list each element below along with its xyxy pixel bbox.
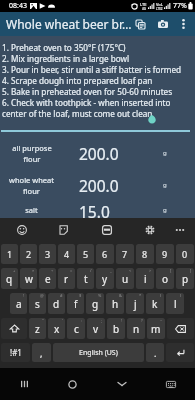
button[interactable]: More options — [174, 12, 192, 36]
button[interactable]: q — [1, 268, 18, 289]
staticText: < — [129, 268, 132, 273]
button[interactable]: emoji — [11, 218, 33, 242]
staticText: c — [74, 322, 79, 336]
staticText: ? — [141, 318, 143, 323]
button[interactable]: sticker — [52, 218, 74, 242]
staticText: * — [139, 293, 142, 298]
button[interactable]: whole wheat flour — [0, 169, 195, 201]
button[interactable]: p — [176, 268, 194, 289]
button[interactable]: salt — [0, 201, 195, 218]
button[interactable]: n — [127, 318, 145, 339]
button[interactable]: 2 — [20, 244, 37, 264]
staticText: 200.0 — [79, 143, 119, 164]
staticText: " — [42, 318, 44, 323]
staticText: # — [60, 293, 63, 298]
staticText: f — [74, 297, 78, 311]
button[interactable]: x — [48, 318, 65, 339]
button[interactable]: y — [96, 268, 114, 289]
button[interactable]: g — [86, 293, 104, 314]
button[interactable]: i — [136, 268, 154, 289]
staticText: 1 — [7, 248, 13, 260]
button[interactable]: Hide keyboard — [97, 368, 146, 400]
staticText: Whole wheat beer br… — [6, 16, 132, 32]
staticText: 3 — [45, 248, 51, 260]
button[interactable]: Backspace — [167, 318, 194, 339]
staticText: i — [144, 272, 147, 286]
button[interactable]: , — [32, 343, 51, 362]
staticText: j — [134, 297, 137, 311]
button[interactable]: o — [156, 268, 174, 289]
button[interactable]: u — [116, 268, 134, 289]
button[interactable]: b — [107, 318, 125, 339]
button[interactable]: more — [169, 218, 191, 242]
button[interactable]: e — [39, 268, 56, 289]
button[interactable]: 8 — [136, 244, 154, 264]
staticText: y — [102, 272, 108, 286]
button[interactable]: s — [29, 293, 46, 314]
staticText: whole wheat flour — [9, 175, 54, 196]
staticText: 7 — [122, 248, 128, 260]
staticText: a — [16, 297, 22, 311]
staticText: 6. Check with toothpick - when inserted … — [2, 97, 171, 108]
button[interactable]: English (US) — [53, 343, 144, 362]
staticText: !#1 — [10, 347, 22, 358]
staticText: n — [133, 322, 140, 336]
button[interactable]: w — [20, 268, 37, 289]
button[interactable]: 0 — [176, 244, 194, 264]
button[interactable]: Shift — [1, 318, 27, 339]
button[interactable]: a — [10, 293, 27, 314]
button[interactable]: Copy — [134, 12, 147, 36]
button[interactable]: m — [147, 318, 165, 339]
button[interactable]: !#1 — [1, 343, 30, 362]
staticText: g — [163, 181, 167, 189]
button[interactable]: h — [106, 293, 124, 314]
staticText: 3. Pour in beer, stir until a stiff batt… — [2, 64, 182, 75]
staticText: 4G — [142, 7, 146, 11]
button[interactable]: v — [87, 318, 105, 339]
button[interactable]: 1 — [1, 244, 18, 264]
button[interactable]: 9 — [156, 244, 174, 264]
button[interactable]: Switch keyboard — [146, 368, 195, 400]
button[interactable]: k — [146, 293, 164, 314]
button[interactable]: j — [126, 293, 144, 314]
button[interactable]: r — [58, 268, 75, 289]
staticText: LTE — [140, 2, 147, 7]
staticText: h — [112, 297, 119, 311]
staticText: k — [152, 297, 158, 311]
button[interactable]: Home — [48, 368, 97, 400]
staticText: & — [119, 293, 122, 298]
staticText: 4 — [64, 248, 70, 260]
button[interactable]: 3 — [39, 244, 56, 264]
staticText: LTE2 — [156, 7, 163, 11]
staticText: 8 — [142, 248, 148, 260]
staticText: ÷ — [51, 268, 54, 273]
button[interactable]: 4 — [58, 244, 75, 264]
button[interactable]: d — [48, 293, 65, 314]
button[interactable]: 6 — [96, 244, 114, 264]
button[interactable]: l — [166, 293, 184, 314]
button[interactable]: all purpose flour — [0, 137, 195, 169]
button[interactable]: f — [67, 293, 84, 314]
button[interactable]: c — [67, 318, 85, 339]
staticText: 08:43 — [9, 1, 27, 11]
button[interactable]: Enter — [166, 343, 194, 362]
button[interactable]: 7 — [116, 244, 134, 264]
staticText: ] — [190, 268, 192, 273]
staticText: + — [13, 268, 16, 273]
button[interactable]: 5 — [77, 244, 94, 264]
staticText: 4. Scrape dough into prepared loaf pan — [2, 75, 153, 86]
staticText: _ — [110, 268, 112, 273]
button[interactable]: . — [146, 343, 164, 362]
button[interactable]: Recent apps — [0, 368, 48, 400]
staticText: ! — [23, 293, 25, 298]
button[interactable]: settings — [139, 218, 161, 242]
staticText: s — [35, 297, 40, 311]
button[interactable]: t — [77, 268, 94, 289]
button[interactable]: Camera — [155, 12, 171, 36]
button[interactable]: gif — [96, 218, 118, 242]
staticText: ' — [62, 318, 63, 323]
staticText: : — [81, 318, 83, 323]
staticText: 0 — [182, 248, 188, 260]
staticText: q — [6, 272, 13, 286]
button[interactable]: z — [29, 318, 46, 339]
